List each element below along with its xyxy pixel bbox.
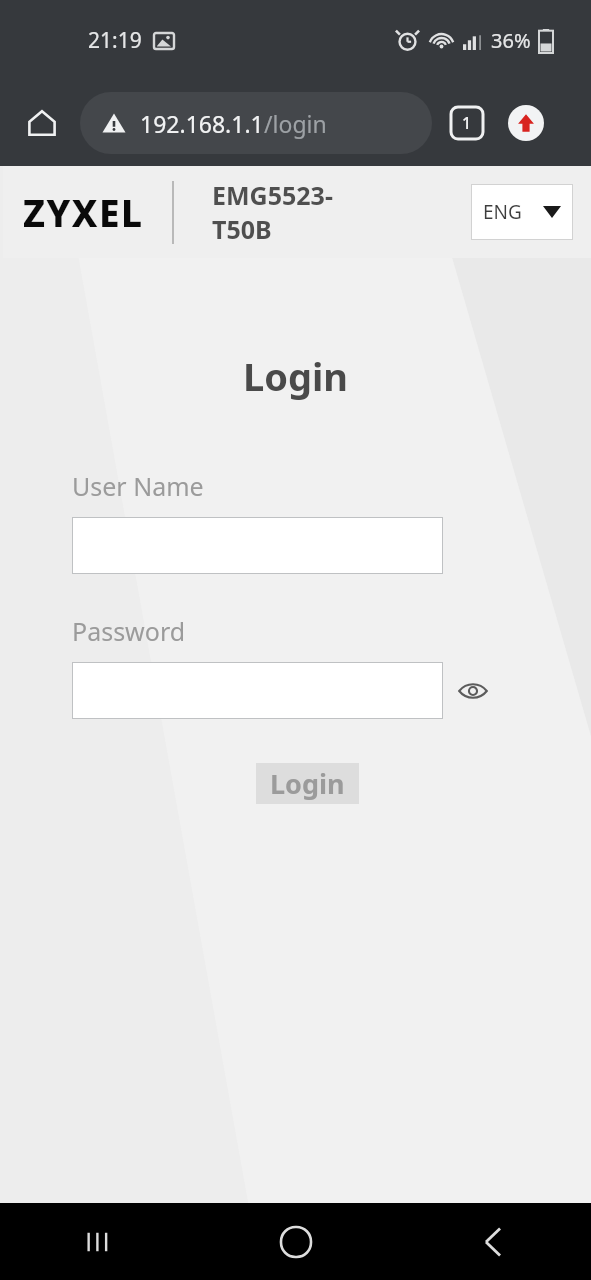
button[interactable]: Back [394, 1203, 591, 1280]
button[interactable] [72, 517, 443, 574]
staticText: Login [0, 350, 591, 402]
staticText: 1 [462, 112, 472, 134]
staticText: 192.168.1.1 [140, 108, 264, 139]
button[interactable]: ENG [471, 184, 573, 240]
staticText: 21:19 [88, 26, 142, 55]
button[interactable] [72, 662, 443, 719]
button[interactable]: 192.168.1.1 [80, 92, 432, 154]
staticText: User Name [72, 469, 204, 503]
button[interactable]: Show password [451, 669, 495, 713]
staticText: ZYXEL [23, 187, 144, 237]
button[interactable]: Speed dial [508, 105, 544, 141]
staticText: Password [72, 614, 186, 648]
staticText: 36% [491, 27, 531, 54]
staticText: EMG5523- [212, 178, 333, 212]
button[interactable]: Home [197, 1203, 394, 1280]
button[interactable]: Tabs [450, 106, 484, 140]
button[interactable]: Login [256, 763, 359, 804]
staticText: /login [264, 108, 327, 139]
staticText: ENG [483, 199, 522, 225]
button[interactable]: Home [22, 103, 62, 143]
staticText: T50B [212, 212, 272, 246]
staticText: Login [270, 765, 345, 802]
button[interactable]: Recents [0, 1203, 197, 1280]
